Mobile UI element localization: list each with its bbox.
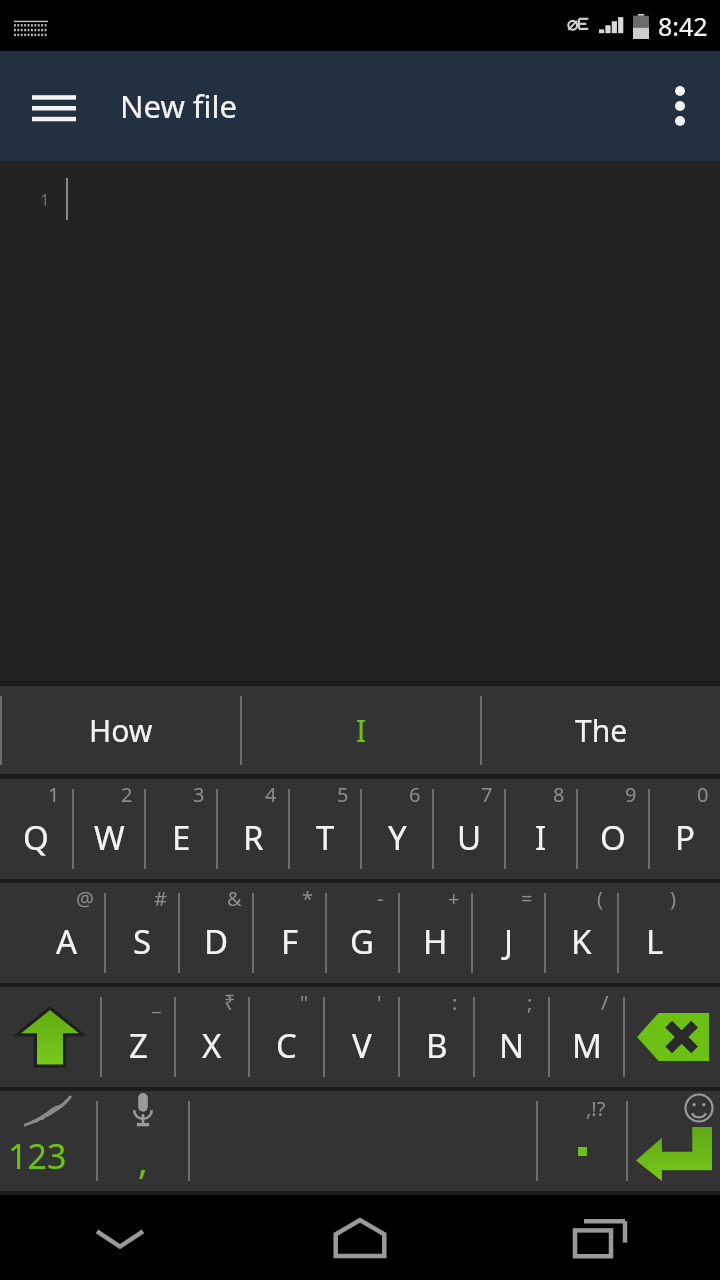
button[interactable]: 123 [0,1091,96,1191]
button[interactable]: The [482,686,720,774]
button[interactable]: @ [30,883,104,983]
staticText: O [600,815,626,860]
staticText: Y [388,815,407,860]
staticText: 9 [625,781,637,808]
staticText: L [646,919,664,964]
staticText: ' [377,989,382,1016]
staticText: 8:42 [658,9,708,43]
staticText: , [138,1136,148,1185]
button[interactable]: ₹ [176,987,248,1087]
staticText: R [243,815,264,860]
staticText: # [154,885,167,912]
staticText: E [172,815,191,860]
staticText: J [504,919,514,964]
staticText: 4 [265,781,277,808]
staticText: 3 [193,781,205,808]
button[interactable]: Enter [628,1091,720,1191]
button[interactable]: 8 [506,779,576,879]
staticText: + [448,885,460,912]
button[interactable]: ' [325,987,398,1087]
staticText: S [133,919,152,964]
button[interactable]: _ [102,987,174,1087]
staticText: 8 [553,781,565,808]
button[interactable]: , [98,1091,188,1191]
staticText: B [426,1023,448,1068]
staticText: ( [597,885,603,912]
button[interactable]: 0 [650,779,720,879]
staticText: A [56,919,78,964]
button[interactable]: : [400,987,473,1087]
staticText: & [227,885,242,912]
button[interactable]: = [473,883,544,983]
staticText: 1 [40,188,50,211]
staticText: 123 [8,1133,67,1179]
staticText: ; [527,989,533,1016]
staticText: I [535,815,547,860]
button[interactable]: 2 [74,779,144,879]
button[interactable]: ) [619,883,690,983]
button[interactable]: Home [240,1195,480,1280]
button[interactable]: More options [640,61,720,151]
staticText: Z [129,1023,148,1068]
button[interactable]: 3 [146,779,216,879]
staticText: / [601,989,609,1016]
staticText: " [300,989,309,1016]
button[interactable]: + [400,883,471,983]
staticText: ) [670,885,676,912]
staticText: @ [76,885,94,912]
button[interactable]: # [106,883,178,983]
staticText: U [457,815,482,860]
button[interactable]: ( [546,883,617,983]
button[interactable]: " [250,987,323,1087]
staticText: New file [120,85,237,127]
staticText: D [204,919,229,964]
button[interactable]: Shift [0,987,100,1087]
button[interactable]: Back [0,1195,240,1280]
staticText: How [89,710,153,751]
staticText: 7 [481,781,493,808]
staticText: P [675,815,695,860]
button[interactable]: Backspace [625,987,720,1087]
button[interactable]: - [327,883,398,983]
button[interactable]: ,!? [538,1091,626,1191]
staticText: M [572,1023,602,1068]
staticText: C [276,1023,297,1068]
staticText: 0 [697,781,709,808]
staticText: F [281,919,299,964]
staticText: 5 [337,781,349,808]
button[interactable]: How [2,686,240,774]
staticText: N [499,1023,525,1068]
staticText: H [423,919,448,964]
button[interactable]: I [242,686,480,774]
staticText: * [302,885,314,912]
staticText: The [575,710,628,751]
button[interactable]: ; [475,987,548,1087]
button[interactable]: 1 [0,779,72,879]
button[interactable]: 6 [362,779,432,879]
button[interactable]: / [550,987,623,1087]
staticText: G [350,919,375,964]
button[interactable]: Recent apps [480,1195,720,1280]
staticText: Q [23,815,49,860]
staticText: X [202,1023,222,1068]
button[interactable]: 9 [578,779,648,879]
staticText: = [521,885,533,912]
button[interactable]: 5 [290,779,360,879]
staticText: 6 [409,781,421,808]
staticText: ₹ [224,989,236,1016]
staticText: K [571,919,592,964]
button[interactable]: 7 [434,779,504,879]
staticText: T [316,815,335,860]
staticText: W [94,815,125,860]
staticText: 2 [121,781,133,808]
button[interactable]: * [254,883,325,983]
button[interactable]: Navigation drawer [12,64,96,148]
staticText: _ [152,989,161,1016]
button[interactable]: & [180,883,252,983]
staticText: V [352,1023,372,1068]
staticText: ,!? [586,1095,606,1122]
staticText: - [377,885,384,912]
button[interactable]: 4 [218,779,288,879]
staticText: 1 [48,781,60,808]
